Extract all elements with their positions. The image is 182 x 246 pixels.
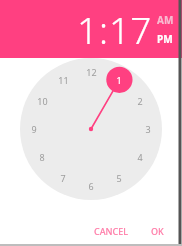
staticText: 5: [116, 172, 122, 184]
staticText: AM: [157, 13, 174, 27]
staticText: :: [99, 4, 109, 54]
staticText: OK: [151, 225, 164, 237]
staticText: 2: [137, 95, 143, 107]
button[interactable]: AM: [157, 13, 174, 27]
staticText: 3: [145, 123, 151, 135]
button[interactable]: 1: [77, 4, 99, 54]
staticText: CANCEL: [94, 225, 129, 237]
button[interactable]: Clock face, hour 1 selected: [0, 58, 182, 216]
staticText: 17: [109, 4, 152, 54]
staticText: 12: [86, 66, 97, 78]
button[interactable]: 17: [109, 4, 152, 54]
button[interactable]: CANCEL: [88, 221, 135, 241]
staticText: 1: [116, 74, 122, 86]
staticText: 7: [60, 172, 66, 184]
staticText: 9: [31, 123, 37, 135]
button[interactable]: OK: [145, 221, 170, 241]
button[interactable]: PM: [157, 32, 173, 46]
staticText: 4: [137, 151, 143, 163]
staticText: 8: [39, 151, 45, 163]
staticText: 10: [37, 95, 48, 107]
staticText: 11: [58, 74, 69, 86]
staticText: PM: [157, 32, 173, 46]
staticText: 6: [88, 180, 94, 192]
staticText: 1: [77, 4, 99, 54]
